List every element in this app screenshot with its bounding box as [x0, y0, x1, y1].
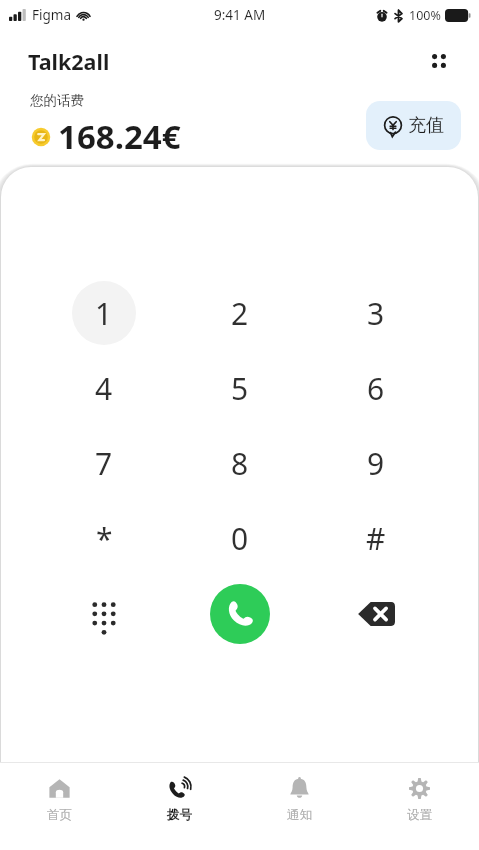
button[interactable]: 7 [72, 431, 136, 495]
staticText: Figma [32, 6, 71, 24]
button[interactable]: 0 [208, 506, 272, 570]
button[interactable]: 通知 [239, 763, 359, 850]
staticText: 9:41 AM [214, 6, 266, 24]
staticText: 充值 [408, 114, 444, 137]
button[interactable]: 2 [208, 281, 272, 345]
button[interactable]: Call [210, 584, 270, 644]
staticText: 4 [95, 368, 113, 409]
staticText: 1 [95, 293, 113, 334]
button[interactable]: 3 [344, 281, 408, 345]
button[interactable]: 4 [72, 356, 136, 420]
staticText: 设置 [407, 807, 432, 823]
staticText: 您的话费 [30, 92, 84, 109]
staticText: 通知 [287, 807, 312, 823]
button[interactable]: # [344, 506, 408, 570]
button[interactable]: 9 [344, 431, 408, 495]
staticText: 100% [409, 7, 441, 24]
button[interactable]: Keypad [75, 585, 133, 643]
button[interactable]: 首页 [0, 763, 119, 850]
button[interactable]: * [72, 506, 136, 570]
staticText: 2 [231, 293, 249, 334]
staticText: 3 [367, 293, 385, 334]
button[interactable]: 拨号 [119, 763, 239, 850]
staticText: 8 [231, 443, 249, 484]
staticText: 6 [367, 368, 385, 409]
button[interactable]: 1 [72, 281, 136, 345]
staticText: 首页 [47, 807, 72, 823]
button[interactable]: 充值 [366, 101, 461, 150]
staticText: # [366, 518, 386, 559]
staticText: 9 [367, 443, 385, 484]
button[interactable]: 8 [208, 431, 272, 495]
staticText: 7 [95, 443, 113, 484]
staticText: Talk2all [28, 47, 110, 76]
staticText: 5 [231, 368, 249, 409]
button[interactable]: 6 [344, 356, 408, 420]
staticText: 拨号 [167, 807, 192, 823]
staticText: 0 [231, 518, 249, 559]
staticText: * [96, 518, 113, 559]
button[interactable]: Backspace [347, 585, 405, 643]
button[interactable]: More options [415, 37, 463, 85]
button[interactable]: 设置 [359, 763, 479, 850]
staticText: 168.24€ [58, 114, 181, 159]
button[interactable]: 5 [208, 356, 272, 420]
